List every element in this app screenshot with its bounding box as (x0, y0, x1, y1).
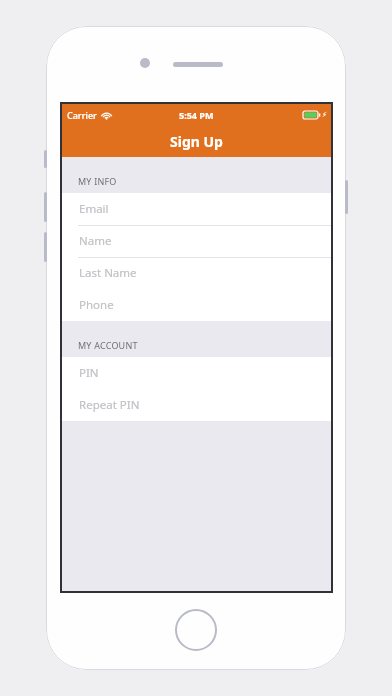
staticText: Email (79, 201, 109, 217)
button[interactable]: PIN (62, 357, 331, 389)
staticText: ⚡ (322, 111, 327, 119)
staticText: Carrier (67, 109, 97, 121)
staticText: PIN (79, 365, 99, 381)
staticText: Last Name (79, 265, 137, 281)
staticText: 5:54 PM (179, 109, 214, 121)
button[interactable]: Last Name (62, 257, 331, 289)
staticText: Repeat PIN (79, 397, 140, 413)
staticText: Phone (79, 297, 114, 313)
staticText: MY INFO (78, 175, 117, 187)
button[interactable]: Name (62, 225, 331, 257)
staticText: Name (79, 233, 112, 249)
staticText: Sign Up (170, 132, 223, 151)
staticText: MY ACCOUNT (78, 339, 138, 351)
button[interactable]: Phone (62, 289, 331, 321)
button[interactable]: Repeat PIN (62, 389, 331, 421)
button[interactable]: Email (62, 193, 331, 225)
